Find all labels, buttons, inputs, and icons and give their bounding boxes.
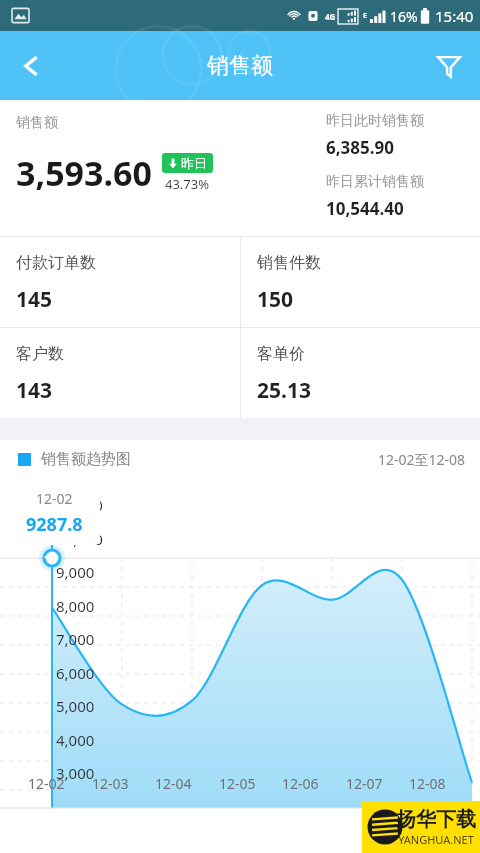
staticText: 12-06 [282, 774, 319, 793]
staticText: 12-05 [219, 774, 256, 793]
staticText: 昨日累计销售额 [326, 173, 424, 191]
staticText: 15:40 [435, 6, 474, 26]
staticText: 5,000 [56, 696, 95, 716]
staticText: 12-02至12-08 [378, 450, 466, 469]
staticText: 43.73% [165, 175, 210, 193]
staticText: 12-02 [28, 774, 65, 793]
staticText: 11,000 [56, 495, 103, 515]
staticText: 付款订单数 [16, 253, 96, 273]
button[interactable]: 客单价 [241, 328, 480, 418]
staticText: 8,000 [56, 596, 95, 616]
staticText: 7,000 [56, 629, 95, 649]
staticText: 12-02 [36, 489, 73, 508]
staticText: E [363, 11, 367, 21]
staticText: 4G [325, 11, 336, 22]
staticText: 25.13 [257, 376, 311, 405]
button[interactable]: 销售件数 [241, 237, 480, 327]
button[interactable]: Filter [418, 31, 480, 100]
staticText: 销售额 [16, 114, 58, 132]
staticText: 4,000 [56, 730, 95, 750]
staticText: 销售额趋势图 [41, 450, 131, 469]
staticText: 3,593.60 [16, 150, 152, 196]
staticText: 销售件数 [257, 253, 321, 273]
staticText: 昨日此时销售额 [326, 112, 424, 130]
staticText: 12-03 [92, 774, 129, 793]
staticText: 12-04 [155, 774, 192, 793]
staticText: 143 [16, 376, 53, 405]
staticText: 145 [16, 285, 53, 314]
staticText: 150 [257, 285, 294, 314]
staticText: 10,000 [56, 529, 103, 549]
staticText: 销售额 [207, 52, 273, 80]
staticText: 6,000 [56, 663, 95, 683]
staticText: 客户数 [16, 344, 64, 364]
staticText: 扬华下载 [396, 807, 476, 832]
staticText: 10,544.40 [326, 197, 404, 220]
staticText: 9287.8 [26, 512, 83, 537]
button[interactable]: Back [0, 31, 64, 100]
staticText: 客单价 [257, 344, 305, 364]
button[interactable]: 付款订单数 [0, 237, 240, 327]
staticText: YANGHUA.NET [398, 832, 474, 847]
button[interactable]: 客户数 [0, 328, 240, 418]
staticText: 6,385.90 [326, 136, 394, 159]
staticText: 昨日 [181, 155, 207, 171]
staticText: 12-08 [409, 774, 446, 793]
staticText: 12-07 [346, 774, 383, 793]
staticText: 3,000 [56, 763, 95, 783]
staticText: 9,000 [56, 562, 95, 582]
staticText: 16% [390, 7, 418, 26]
